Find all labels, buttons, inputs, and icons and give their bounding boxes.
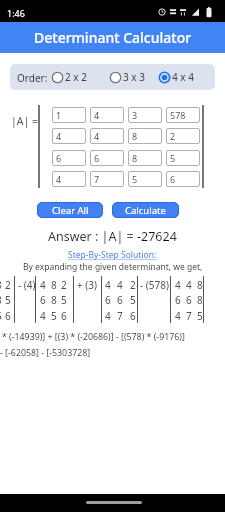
staticText: 4 [186,278,192,292]
staticText: 5 [132,173,138,185]
button[interactable]: 7 [90,171,124,187]
staticText: 6 [105,293,111,307]
button[interactable]: 4 x 4 [159,64,194,90]
staticText: 5 [130,293,136,307]
staticText: 6 [40,293,46,307]
staticText: 4 [175,278,181,292]
button[interactable]: 4 [52,128,86,144]
staticText: 2 [170,130,176,142]
staticText: 5 [0,309,2,323]
staticText: 5 [51,309,57,323]
staticText: Order: [17,71,48,85]
button[interactable]: 6 [166,171,200,187]
staticText: 4 [40,278,46,292]
staticText: 8 [0,293,2,307]
staticText: 4 [40,309,46,323]
staticText: - (578) [140,278,169,292]
staticText: 4 [56,173,62,185]
staticText: 5 [170,152,176,164]
staticText: 4 [117,278,123,292]
staticText: 7 [94,173,100,185]
button[interactable]: Step-By-Step Solution: [68,249,157,261]
staticText: 7 [117,309,123,323]
staticText: |A| = [11,114,39,128]
staticText: 8 [51,278,57,292]
staticText: Answer : |A| = -27624 [48,228,177,245]
staticText: 2 [61,278,67,292]
staticText: 8 [132,130,138,142]
staticText: 6 [130,309,136,323]
staticText: 6 [175,293,181,307]
staticText: 4 [94,130,100,142]
button[interactable]: 578 [166,107,200,123]
staticText: 4 [94,109,100,121]
button[interactable]: 3 x 3 [110,64,145,90]
staticText: Clear All [52,204,89,217]
button[interactable]: 4 [90,107,124,123]
staticText: 6 [186,293,192,307]
staticText: 6 [5,309,11,323]
button[interactable]: 8 [128,150,162,166]
button[interactable]: Clear All [37,202,103,218]
staticText: 8 [132,152,138,164]
button[interactable]: 6 [52,150,86,166]
button[interactable]: 4 [90,128,124,144]
staticText: 2 [5,278,11,292]
staticText: 1:46 [7,7,25,19]
staticText: 6 [56,152,62,164]
button[interactable]: 5 [166,150,200,166]
staticText: ) * (-14939)] + [(3) * (-20686)] - [(578… [0,331,185,343]
button[interactable]: 4 [52,171,86,187]
staticText: 4 [175,309,181,323]
staticText: 4 [105,278,111,292]
staticText: Calculate [125,204,166,217]
staticText: 8 [0,278,2,292]
staticText: 7 [186,309,192,323]
staticText: 8 [197,278,203,292]
staticText: 4 [105,309,111,323]
staticText: 1 [56,109,62,121]
staticText: 5 [61,293,67,307]
staticText: 2 x 2 [65,70,87,84]
staticText: 4 [56,130,62,142]
staticText: 2 [130,278,136,292]
staticText: 5 [5,293,11,307]
button[interactable]: 5 [128,171,162,187]
staticText: 4 x 4 [172,70,194,84]
staticText: 8 [197,293,203,307]
button[interactable]: Calculate [112,202,179,218]
staticText: 6 [170,173,176,185]
staticText: By expanding the given determinant, we g… [23,261,203,273]
staticText: 6 [117,293,123,307]
button[interactable]: 1 [52,107,86,123]
staticText: + (3) [77,278,98,292]
staticText: 6 [94,152,100,164]
button[interactable]: 2 [166,128,200,144]
staticText: 3 x 3 [123,70,145,84]
staticText: 3 [132,109,138,121]
staticText: Determinant Calculator [34,28,192,47]
staticText: - (4) [18,278,36,292]
staticText: 578 [170,109,186,121]
staticText: 5 [197,309,203,323]
button[interactable]: 3 [128,107,162,123]
button[interactable]: 8 [128,128,162,144]
staticText: 8 [51,293,57,307]
staticText: - [-62058] - [-5303728] [0,347,91,359]
button[interactable]: 2 x 2 [52,64,87,90]
button[interactable]: 6 [90,150,124,166]
staticText: 6 [61,309,67,323]
